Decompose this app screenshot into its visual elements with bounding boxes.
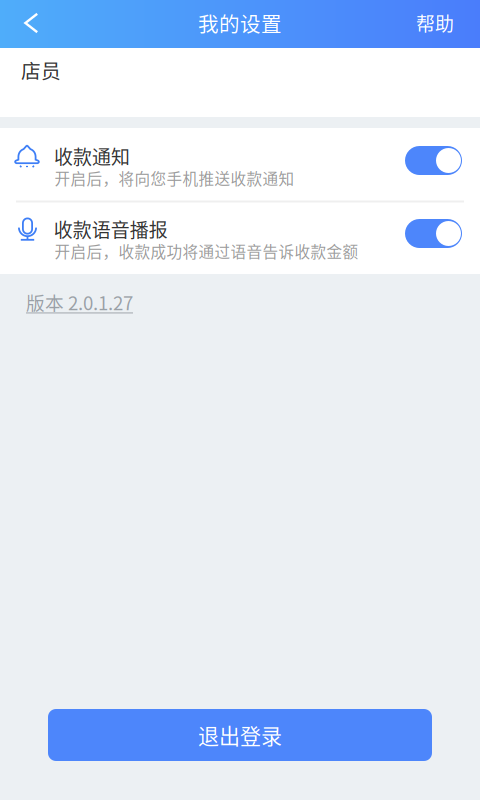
staticText: 收款通知 bbox=[54, 142, 130, 170]
button[interactable]: 帮助 bbox=[402, 0, 468, 47]
button[interactable]: 版本 2.0.1.27 bbox=[26, 287, 166, 317]
button[interactable]: Back bbox=[7, 0, 55, 47]
staticText: 版本 2.0.1.27 bbox=[26, 288, 133, 315]
staticText: 帮助 bbox=[416, 9, 454, 37]
staticText: 我的设置 bbox=[198, 8, 282, 38]
button[interactable]: 收款语音播报 bbox=[0, 201, 480, 274]
staticText: 开启后，将向您手机推送收款通知 bbox=[54, 167, 294, 189]
button[interactable]: 收款通知 bbox=[0, 128, 480, 201]
staticText: 开启后，收款成功将通过语音告诉收款金额 bbox=[54, 240, 358, 262]
button[interactable]: 退出登录 bbox=[48, 709, 432, 761]
staticText: 收款语音播报 bbox=[54, 215, 168, 243]
staticText: 退出登录 bbox=[198, 720, 282, 750]
staticText: 店员 bbox=[21, 56, 61, 84]
